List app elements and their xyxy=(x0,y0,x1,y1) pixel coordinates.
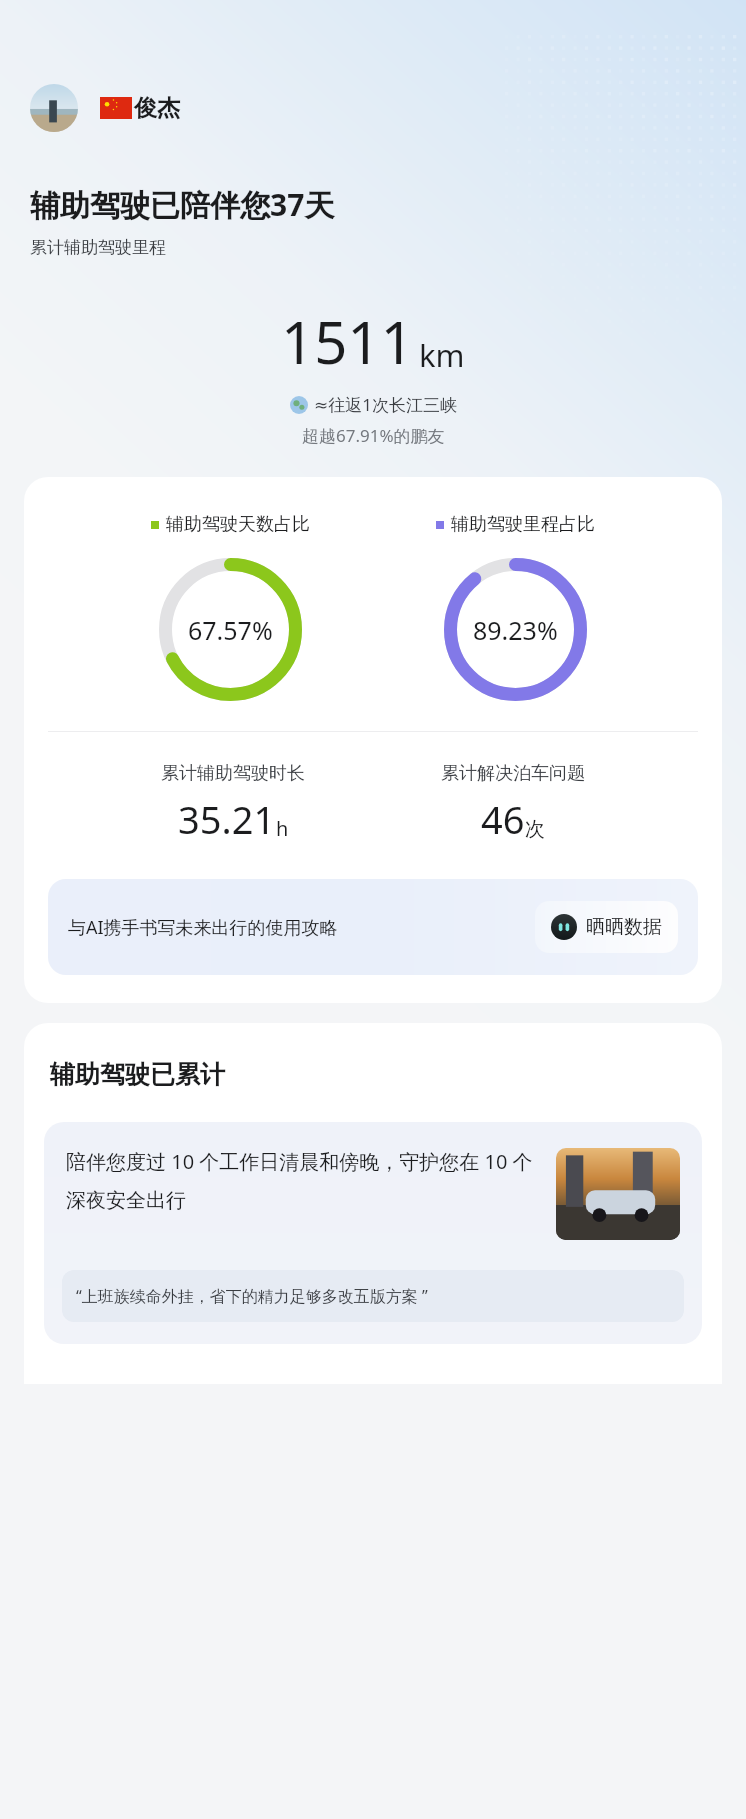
button[interactable]: 俊杰 xyxy=(30,84,180,132)
staticText: 超越67.91%的鹏友 xyxy=(302,424,445,447)
staticText: h xyxy=(276,815,289,842)
staticText: 俊杰 xyxy=(134,94,180,123)
staticText: 89.23% xyxy=(473,613,558,647)
staticText: ≈往返1次长江三峡 xyxy=(314,393,457,416)
staticText: 1511 xyxy=(281,302,414,381)
staticText: 辅助驾驶天数占比 xyxy=(166,513,310,536)
staticText: 46 xyxy=(481,793,525,845)
staticText: 陪伴您度过 10 个工作日清晨和傍晚，守护您在 10 个深夜安全出行 xyxy=(66,1148,540,1213)
staticText: 67.57% xyxy=(188,613,273,647)
staticText: 累计辅助驾驶时长 xyxy=(161,762,305,785)
staticText: 辅助驾驶里程占比 xyxy=(451,513,595,536)
staticText: 晒晒数据 xyxy=(586,915,662,939)
staticText: 与AI携手书写未来出行的使用攻略 xyxy=(68,915,521,940)
staticText: 累计解决泊车问题 xyxy=(441,762,585,785)
staticText: “上班族续命外挂，省下的精力足够多改五版方案 ” xyxy=(76,1285,670,1307)
staticText: 累计辅助驾驶里程 xyxy=(30,237,166,258)
staticText: 35.21 xyxy=(178,793,276,845)
staticText: km xyxy=(419,334,465,376)
staticText: 辅助驾驶已陪伴您37天 xyxy=(30,184,335,225)
staticText: 次 xyxy=(525,817,545,842)
staticText: 辅助驾驶已累计 xyxy=(50,1059,225,1090)
button[interactable]: 晒晒数据 xyxy=(535,901,678,953)
